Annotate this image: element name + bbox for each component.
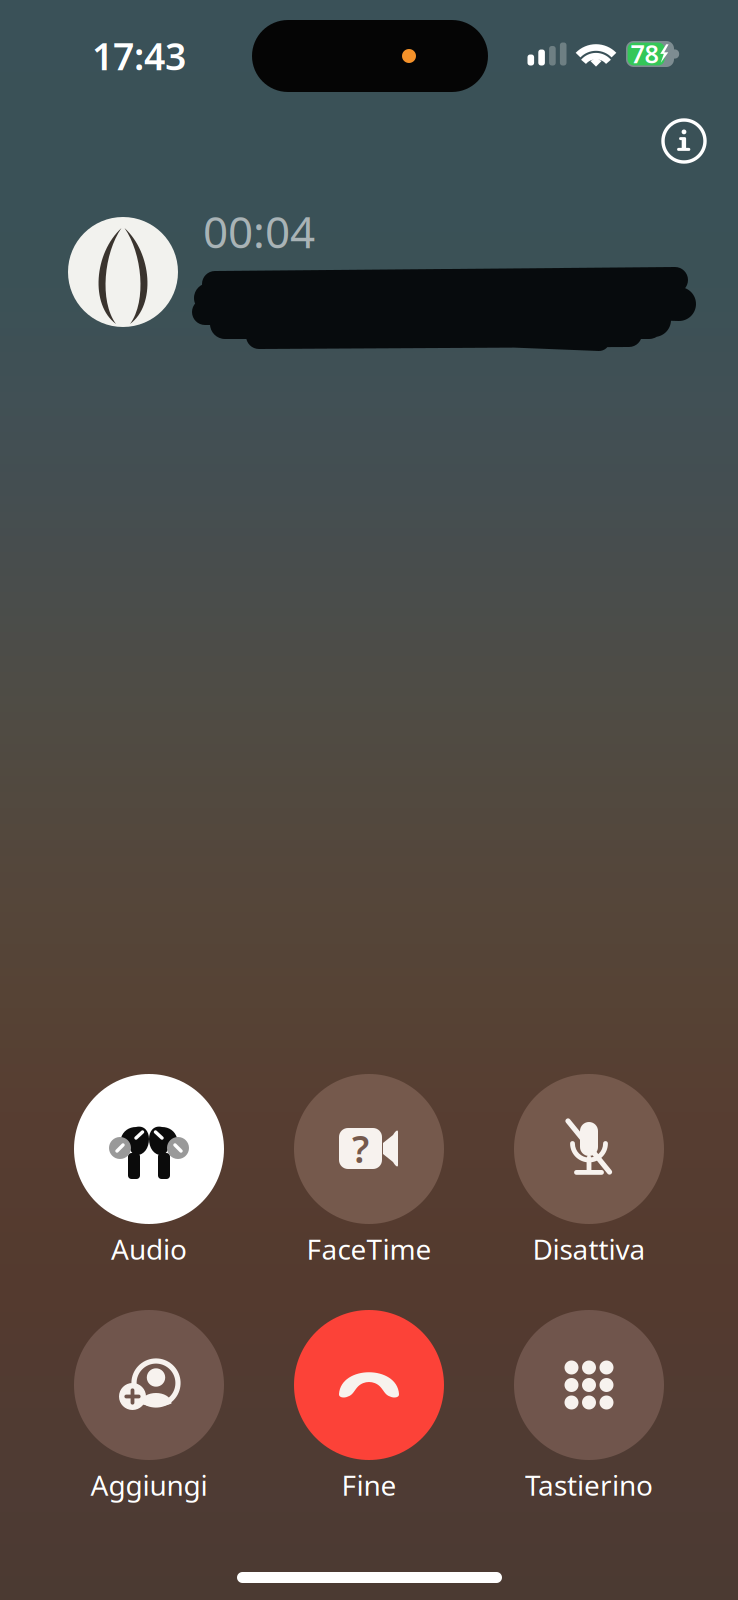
- staticText: 78: [630, 37, 658, 70]
- button[interactable]: Fine: [259, 1310, 479, 1499]
- button[interactable]: ?: [259, 1074, 479, 1263]
- button[interactable]: Informazioni sulla chiamata: [652, 109, 716, 173]
- button[interactable]: Aggiungi: [39, 1310, 259, 1499]
- staticText: 17:43: [92, 31, 186, 81]
- staticText: 00:04: [203, 202, 315, 260]
- staticText: ?: [352, 1124, 369, 1173]
- staticText: FaceTime: [306, 1230, 431, 1268]
- button[interactable]: Audio: [39, 1074, 259, 1263]
- button[interactable]: Disattiva: [479, 1074, 699, 1263]
- button[interactable]: Tastierino: [479, 1310, 699, 1499]
- staticText: Aggiungi: [90, 1466, 207, 1504]
- staticText: Disattiva: [532, 1230, 645, 1268]
- staticText: Tastierino: [525, 1466, 653, 1504]
- staticText: Audio: [111, 1230, 187, 1268]
- staticText: Fine: [341, 1466, 396, 1504]
